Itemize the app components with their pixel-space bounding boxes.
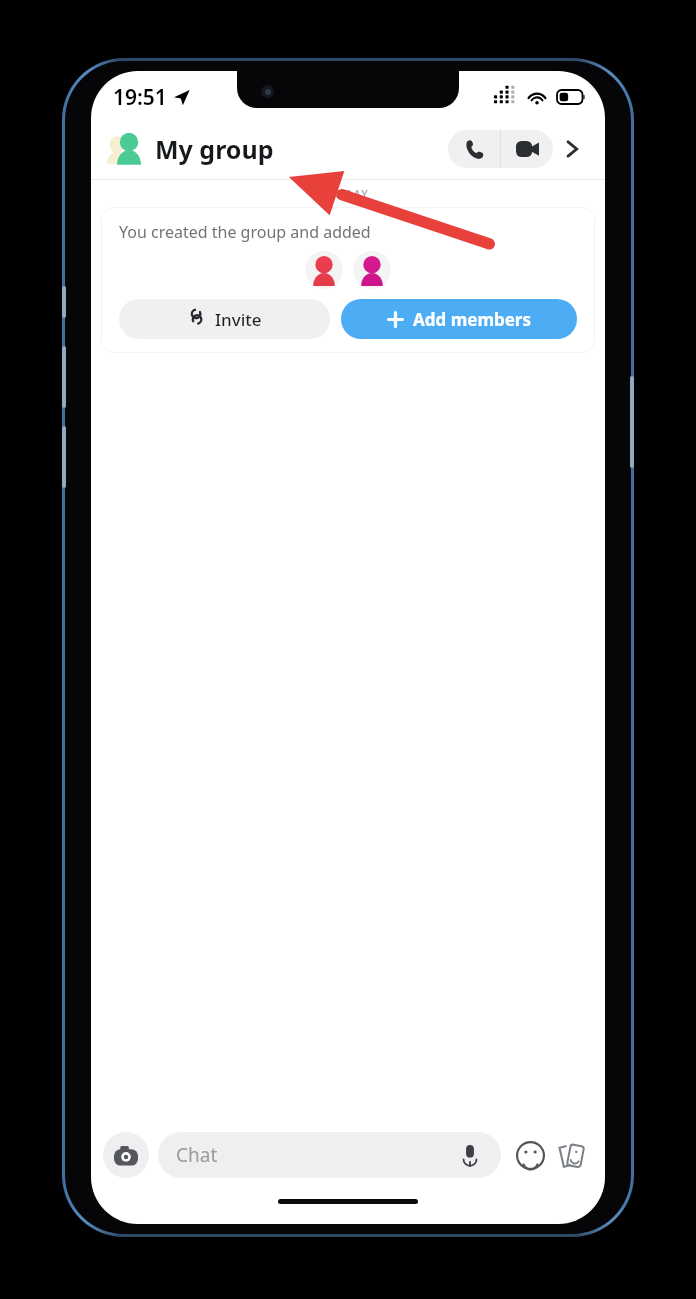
button[interactable]: Add members: [341, 299, 577, 339]
button[interactable]: Stickers: [551, 1134, 593, 1176]
staticText: 19:51: [113, 83, 167, 112]
staticText: Invite: [215, 308, 262, 331]
button[interactable]: Voice call: [448, 130, 500, 168]
button[interactable]: Video call: [501, 130, 553, 168]
staticText: Add members: [413, 308, 531, 331]
button[interactable]: Group details: [553, 130, 591, 168]
staticText: My group: [155, 132, 274, 166]
button[interactable]: Invite: [119, 299, 330, 339]
button[interactable]: Emoji: [509, 1134, 551, 1176]
staticText: Chat: [176, 1142, 218, 1168]
button[interactable]: Camera: [103, 1132, 149, 1178]
button[interactable]: Chat: [158, 1132, 501, 1178]
button[interactable]: Voice message: [457, 1142, 483, 1168]
staticText: TODAY: [91, 186, 605, 201]
staticText: You created the group and added: [119, 221, 371, 243]
